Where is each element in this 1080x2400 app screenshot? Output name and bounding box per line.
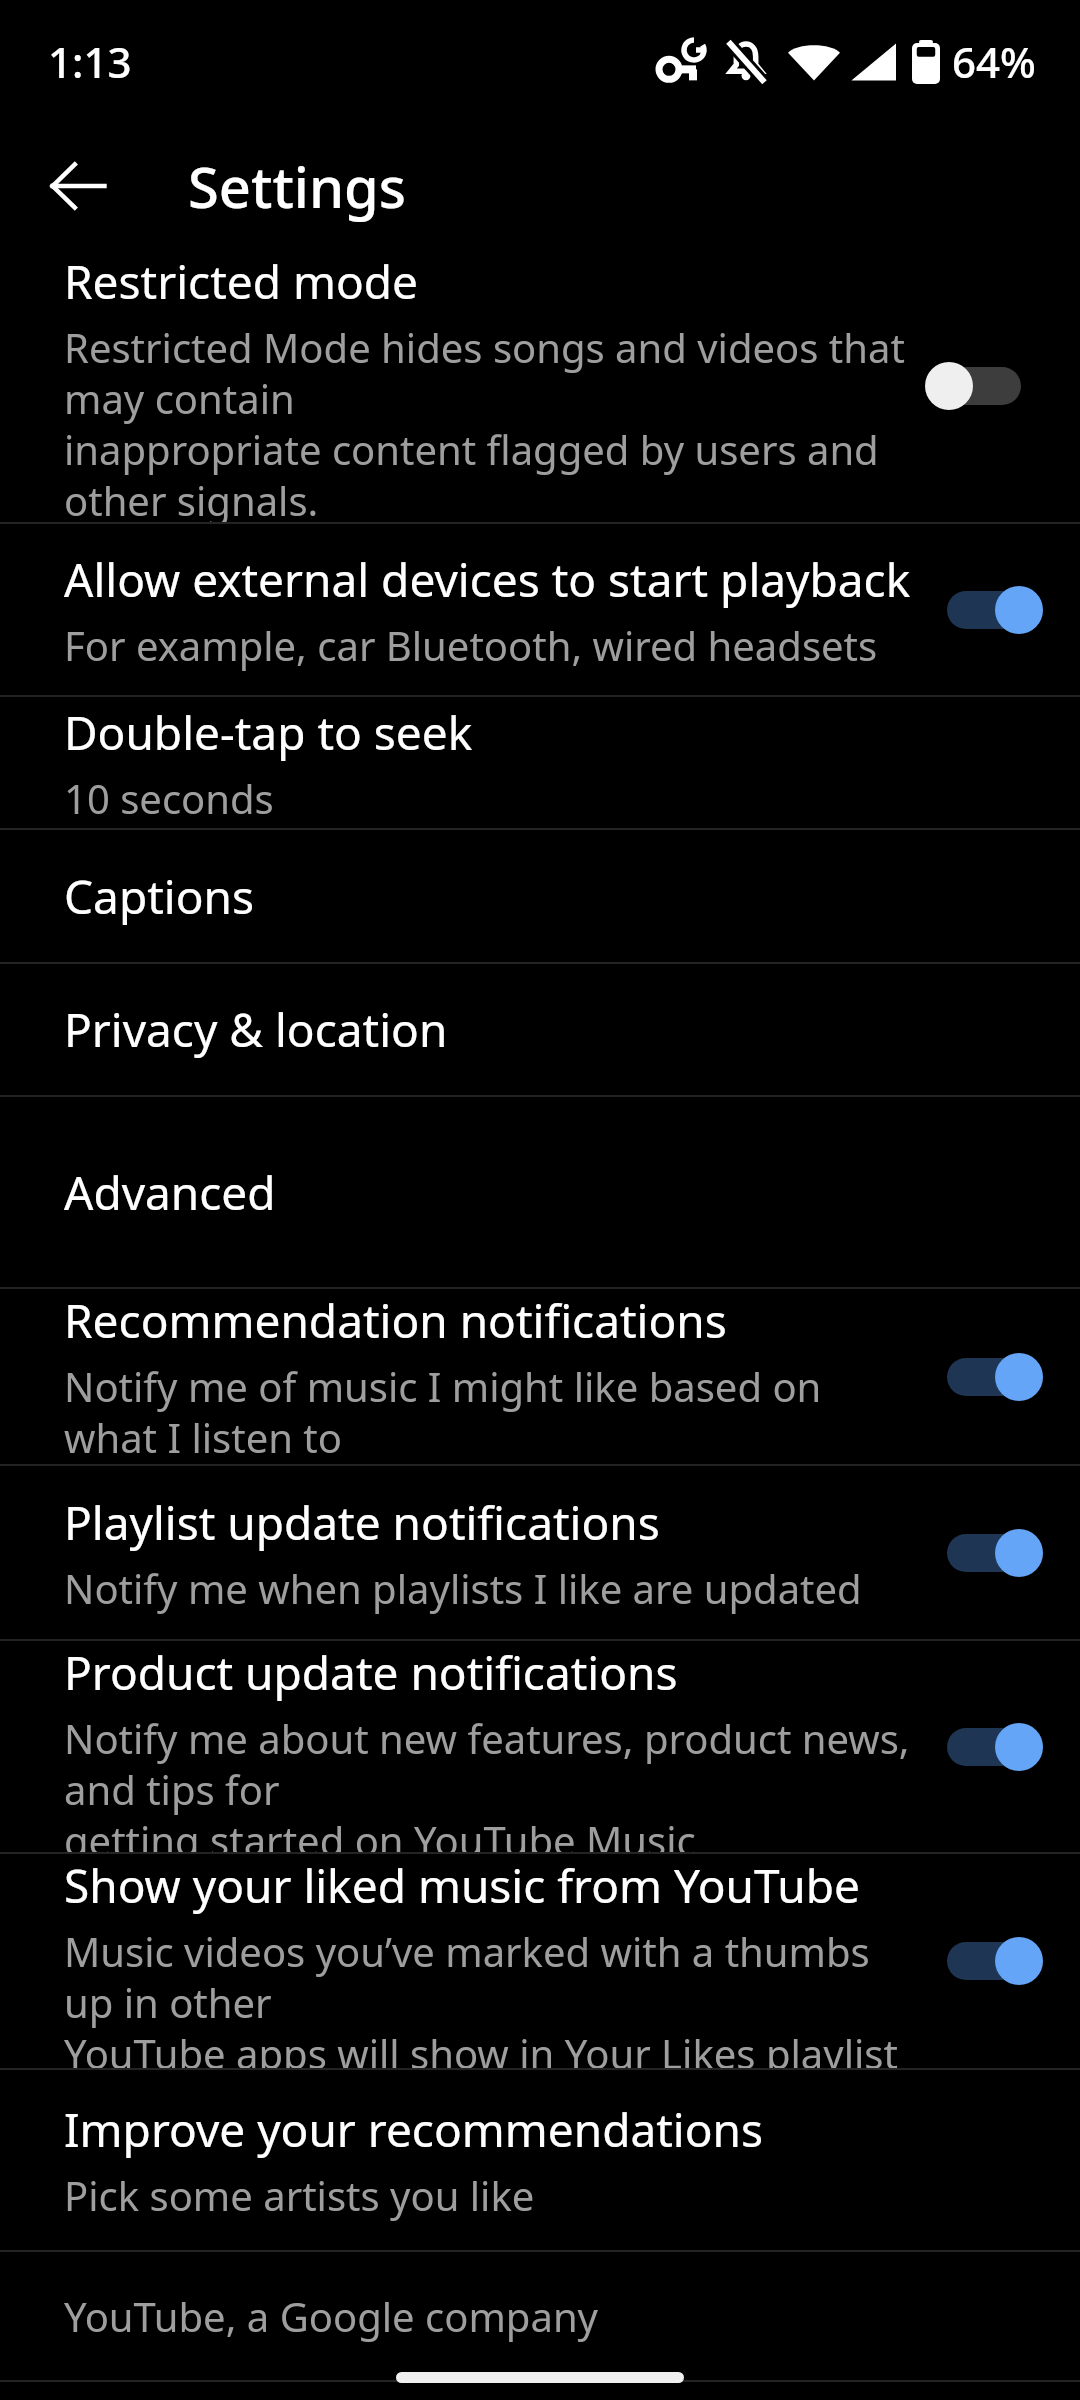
button[interactable]: Product update notifications	[0, 1641, 1080, 1852]
staticText: 10 seconds	[64, 771, 274, 825]
staticText: Captions	[64, 865, 254, 928]
staticText: 64%	[952, 33, 1036, 90]
staticText: Notify me of music I might like based on…	[64, 1359, 920, 1464]
button[interactable]: Recommendation notifications	[0, 1289, 1080, 1464]
staticText: YouTube, a Google company	[64, 2289, 598, 2343]
button[interactable]: Allow external devices to start playback	[930, 562, 1050, 658]
button[interactable]: YouTube, a Google company	[0, 2252, 1080, 2380]
staticText: Double-tap to seek	[64, 701, 473, 764]
button[interactable]: Back	[20, 128, 136, 244]
staticText: Recommendation notifications	[64, 1289, 727, 1352]
staticText: Advanced	[64, 1161, 276, 1224]
button[interactable]: Product update notifications	[930, 1699, 1050, 1795]
staticText: Improve your recommendations	[64, 2098, 764, 2161]
button[interactable]: Restricted mode	[930, 338, 1050, 434]
staticText: Product update notifications	[64, 1641, 678, 1704]
button[interactable]: Advanced	[0, 1097, 1080, 1287]
button[interactable]: Improve your recommendations	[0, 2070, 1080, 2250]
button[interactable]: Allow external devices to start playback	[0, 524, 1080, 695]
staticText: Settings	[188, 148, 407, 224]
button[interactable]: Privacy & location	[0, 964, 1080, 1095]
staticText: Notify me when playlists I like are upda…	[64, 1561, 862, 1615]
button[interactable]: Captions	[0, 830, 1080, 962]
staticText: Notify me about new features, product ne…	[64, 1711, 920, 1852]
button[interactable]: Double-tap to seek	[0, 697, 1080, 828]
staticText: Restricted mode	[64, 250, 419, 313]
staticText: Restricted Mode hides songs and videos t…	[64, 320, 920, 522]
staticText: Music videos you’ve marked with a thumbs…	[64, 1924, 920, 2068]
staticText: 1:13	[48, 33, 132, 90]
staticText: Privacy & location	[64, 998, 448, 1061]
button[interactable]: Recommendation notifications	[930, 1329, 1050, 1425]
staticText: Allow external devices to start playback	[64, 548, 911, 611]
staticText: For example, car Bluetooth, wired headse…	[64, 618, 878, 672]
button[interactable]: Playlist update notifications	[930, 1505, 1050, 1601]
staticText: Pick some artists you like	[64, 2168, 535, 2222]
button[interactable]: Playlist update notifications	[0, 1466, 1080, 1639]
staticText: Show your liked music from YouTube	[64, 1854, 860, 1917]
button[interactable]: Show your liked music from YouTube	[930, 1913, 1050, 2009]
button[interactable]: Show your liked music from YouTube	[0, 1854, 1080, 2068]
button[interactable]: Restricted mode	[0, 250, 1080, 522]
staticText: Playlist update notifications	[64, 1491, 660, 1554]
